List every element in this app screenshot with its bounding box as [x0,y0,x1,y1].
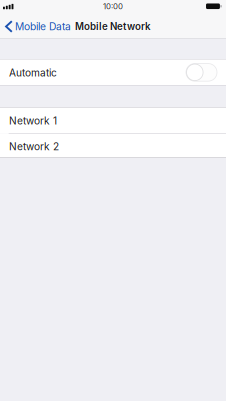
staticText: 10:00 [103,2,123,11]
button[interactable]: Network 2 [0,134,226,157]
button[interactable]: Network 1 [0,108,226,133]
staticText: Network 1 [9,115,57,127]
staticText: Network 2 [9,140,59,153]
staticText: Mobile Data [15,20,71,33]
staticText: Mobile Network [75,21,151,32]
button[interactable]: Mobile Data [0,15,73,38]
button[interactable]: Automatic [0,60,226,85]
staticText: Automatic [9,67,57,79]
